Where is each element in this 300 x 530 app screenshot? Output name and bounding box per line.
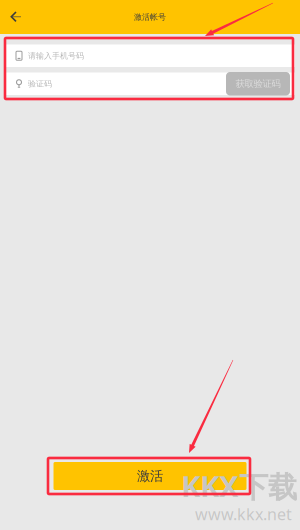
staticText: 请输入手机号码 — [28, 51, 84, 61]
staticText: www.kkx.net — [195, 503, 292, 525]
button[interactable]: 获取验证码 — [226, 72, 290, 95]
staticText: 激活帐号 — [134, 12, 166, 22]
staticText: 激活 — [137, 468, 163, 484]
button[interactable]: 返回 — [0, 0, 34, 34]
staticText: KKX下载 — [181, 466, 297, 505]
staticText: 验证码 — [28, 79, 52, 89]
staticText: 获取验证码 — [235, 78, 280, 89]
button[interactable]: 激活 — [53, 462, 246, 490]
